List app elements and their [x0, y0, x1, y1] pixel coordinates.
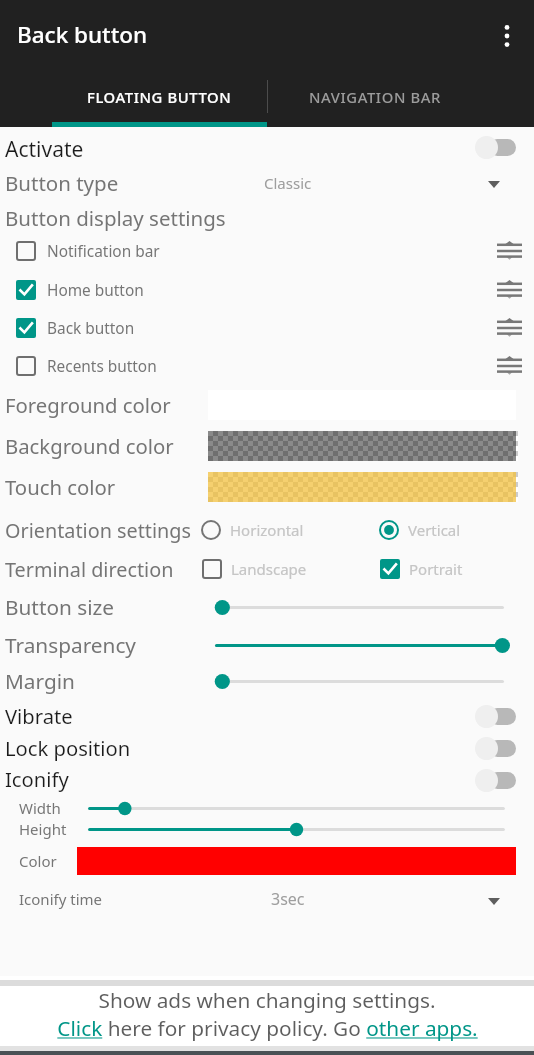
- other: Reorder Notification bar: [497, 241, 522, 261]
- staticText: Touch color: [5, 473, 116, 501]
- staticText: Width: [19, 798, 61, 818]
- button[interactable]: Iconify time: [0, 883, 534, 917]
- button[interactable]: Lock position: [0, 734, 534, 766]
- staticText: Margin: [5, 667, 75, 695]
- other: Reorder Back button: [497, 318, 522, 338]
- button[interactable]: Click here for privacy policy. Go other …: [0, 1014, 534, 1042]
- button[interactable]: FLOATING BUTTON: [52, 76, 267, 122]
- staticText: Foreground color: [5, 391, 171, 419]
- staticText: Iconify: [5, 765, 69, 793]
- staticText: Iconify time: [19, 889, 102, 909]
- staticText: Background color: [5, 432, 174, 460]
- button[interactable]: Landscape: [202, 553, 307, 585]
- button[interactable]: Touch color: [0, 467, 534, 507]
- button[interactable]: Home button: [0, 271, 534, 309]
- staticText: Back button: [17, 19, 148, 50]
- button[interactable]: Vibrate: [0, 702, 534, 734]
- staticText: Notification bar: [47, 241, 160, 262]
- other: Reorder Recents button: [497, 356, 522, 376]
- button[interactable]: Button type: [0, 165, 534, 200]
- staticText: Vibrate: [5, 702, 73, 730]
- staticText: FLOATING BUTTON: [87, 87, 232, 107]
- staticText: Vertical: [408, 520, 461, 540]
- staticText: Classic: [264, 173, 312, 193]
- staticText: Color: [19, 851, 57, 871]
- button[interactable]: Transparency: [0, 629, 534, 661]
- staticText: Show ads when changing settings.: [98, 986, 436, 1014]
- staticText: Button display settings: [5, 204, 226, 232]
- other: Reorder Home button: [497, 280, 522, 300]
- button[interactable]: Height: [0, 813, 534, 845]
- staticText: Button size: [5, 593, 115, 621]
- button[interactable]: Activate: [0, 132, 534, 167]
- button[interactable]: Back button: [0, 309, 534, 347]
- button[interactable]: Background color: [0, 426, 534, 466]
- button[interactable]: Horizontal: [201, 514, 304, 546]
- button[interactable]: Vertical: [379, 514, 461, 546]
- button[interactable]: Iconify: [0, 765, 534, 797]
- button[interactable]: Color: [0, 847, 534, 875]
- staticText: Portrait: [409, 559, 463, 579]
- button[interactable]: Portrait: [380, 553, 463, 585]
- button[interactable]: Notification bar: [0, 232, 534, 270]
- button[interactable]: Foreground color: [0, 385, 534, 425]
- button[interactable]: Margin: [0, 665, 534, 697]
- staticText: Home button: [47, 280, 144, 301]
- button[interactable]: Width: [0, 792, 534, 824]
- staticText: Terminal direction: [5, 556, 174, 583]
- staticText: NAVIGATION BAR: [309, 87, 441, 107]
- staticText: Recents button: [47, 356, 157, 377]
- staticText: Back button: [47, 318, 135, 339]
- button[interactable]: More options: [485, 14, 529, 58]
- staticText: Activate: [5, 135, 84, 164]
- staticText: Lock position: [5, 734, 131, 762]
- button[interactable]: NAVIGATION BAR: [267, 76, 482, 122]
- staticText: Height: [19, 819, 67, 839]
- button[interactable]: Button size: [0, 591, 534, 623]
- staticText: Transparency: [5, 631, 136, 659]
- staticText: 3sec: [271, 888, 305, 910]
- staticText: Horizontal: [230, 520, 304, 540]
- staticText: Click here for privacy policy. Go other …: [57, 1014, 478, 1042]
- button[interactable]: Recents button: [0, 347, 534, 385]
- staticText: Landscape: [231, 559, 307, 579]
- staticText: Orientation settings: [5, 517, 191, 544]
- staticText: Button type: [5, 169, 119, 197]
